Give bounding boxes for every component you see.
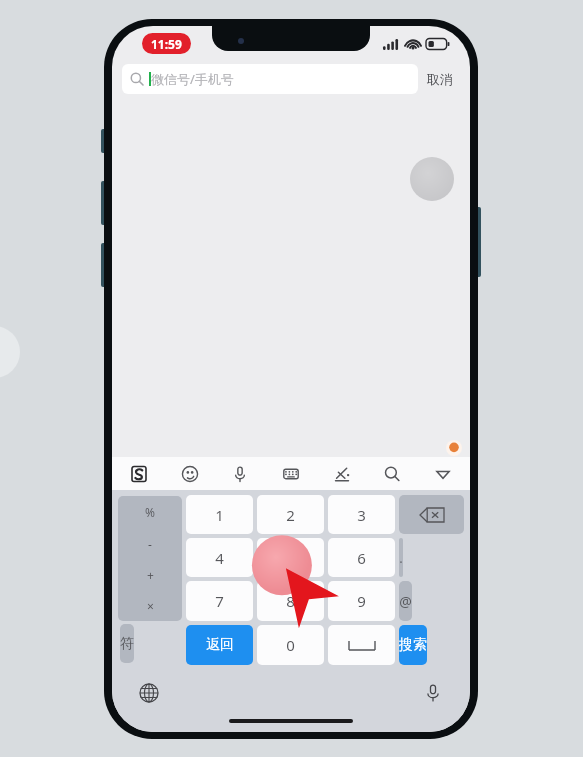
button[interactable]: Space [328,625,395,665]
staticText: + [147,567,154,583]
button[interactable]: + [118,559,182,590]
staticText: 2 [286,505,295,525]
staticText: × [147,598,154,614]
staticText: 11:59 [151,36,182,52]
button[interactable]: Voice input [225,459,255,489]
button[interactable]: 2 [257,495,324,534]
staticText: 3 [357,505,366,525]
staticText: 1 [215,505,224,525]
button[interactable]: @ [399,581,412,621]
staticText: 返回 [206,636,234,654]
button[interactable]: Switch language [134,678,164,708]
button[interactable]: % [118,496,182,528]
button[interactable]: 搜索 [399,625,427,665]
button[interactable]: 0 [257,625,324,665]
button[interactable]: 符 [120,624,134,663]
button[interactable]: 7 [186,581,253,621]
button[interactable]: 微信号/手机号 [122,64,418,94]
button[interactable]: Keyboard [276,459,306,489]
button[interactable]: 返回 [186,625,253,665]
button[interactable]: - [118,528,182,559]
button[interactable]: 8 [257,581,324,621]
button[interactable]: 9 [328,581,395,621]
button[interactable]: 6 [328,538,395,577]
button[interactable]: 取消 [418,65,462,93]
button[interactable]: × [118,590,182,621]
button[interactable]: Sogou input [124,459,154,489]
staticText: @ [399,592,412,611]
staticText: 取消 [427,71,453,87]
staticText: 7 [215,591,224,611]
staticText: 4 [215,548,224,568]
staticText: 微信号/手机号 [151,70,234,88]
button[interactable]: Search [377,459,407,489]
button[interactable]: . [399,538,403,577]
staticText: . [399,549,403,567]
staticText: 9 [357,591,366,611]
staticText: 0 [286,635,295,655]
staticText: 搜索 [399,636,427,654]
staticText: 符 [120,635,134,653]
button[interactable]: Emoji [175,459,205,489]
button[interactable]: Voice input [418,678,448,708]
button[interactable]: Backspace [399,495,464,534]
button[interactable]: 4 [186,538,253,577]
button[interactable]: 1 [186,495,253,534]
button[interactable]: Hide keyboard [428,459,458,489]
staticText: % [145,504,155,520]
button[interactable]: 5 [257,538,324,577]
button[interactable]: 3 [328,495,395,534]
staticText: 8 [286,591,295,611]
staticText: - [148,536,152,552]
button[interactable]: Handwriting [327,459,357,489]
staticText: 6 [357,548,366,568]
button[interactable]: Floating assistant [410,157,454,201]
